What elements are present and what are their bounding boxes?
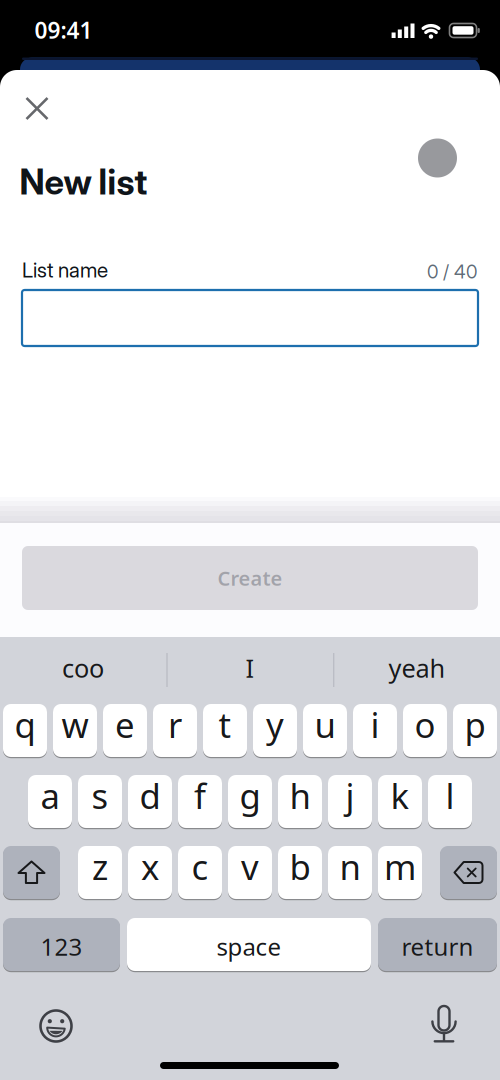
button[interactable]: n	[328, 846, 372, 901]
button[interactable]: f	[178, 775, 222, 830]
staticText: 123	[40, 931, 82, 962]
button[interactable]	[440, 846, 497, 901]
button[interactable]: p	[453, 704, 497, 759]
staticText: List name	[22, 257, 108, 282]
button[interactable]	[39, 1009, 73, 1043]
button[interactable]: x	[128, 846, 172, 901]
button[interactable]: 123	[3, 918, 120, 973]
button[interactable]: l	[428, 775, 472, 830]
button[interactable]: r	[153, 704, 197, 759]
button[interactable]	[3, 846, 60, 901]
staticText: n	[339, 843, 360, 889]
staticText: h	[289, 772, 310, 818]
button[interactable]: j	[328, 775, 372, 830]
staticText: e	[115, 701, 135, 747]
button[interactable]: q	[3, 704, 47, 759]
staticText: d	[139, 772, 160, 818]
button[interactable]: Create	[22, 546, 478, 610]
button[interactable]: t	[203, 704, 247, 759]
staticText: p	[464, 701, 485, 747]
staticText: Create	[217, 565, 282, 591]
staticText: return	[401, 931, 473, 962]
staticText: 0 / 40	[427, 260, 477, 283]
staticText: coo	[62, 651, 104, 685]
button[interactable]: space	[127, 918, 371, 973]
button[interactable]: s	[78, 775, 122, 830]
button[interactable]: d	[128, 775, 172, 830]
staticText: f	[194, 772, 206, 818]
staticText: l	[445, 772, 454, 818]
staticText: k	[390, 772, 409, 818]
staticText: b	[289, 843, 310, 889]
staticText: 09:41	[34, 15, 92, 45]
button[interactable]: I	[170, 643, 330, 693]
button[interactable]: e	[103, 704, 147, 759]
staticText: I	[245, 651, 254, 685]
button[interactable]: g	[228, 775, 272, 830]
button[interactable]: v	[228, 846, 272, 901]
staticText: space	[216, 931, 281, 962]
button[interactable]: return	[378, 918, 497, 973]
staticText: t	[218, 701, 231, 747]
staticText: w	[61, 701, 88, 747]
button[interactable]	[22, 290, 478, 346]
button[interactable]: h	[278, 775, 322, 830]
staticText: o	[414, 701, 435, 747]
staticText: r	[168, 701, 182, 747]
button[interactable]: o	[403, 704, 447, 759]
button[interactable]	[432, 1006, 456, 1043]
button[interactable]	[16, 88, 57, 129]
staticText: yeah	[388, 651, 445, 685]
staticText: g	[239, 772, 260, 818]
button[interactable]	[418, 138, 457, 177]
staticText: m	[384, 843, 416, 889]
button[interactable]: coo	[3, 643, 163, 693]
button[interactable]: w	[53, 704, 97, 759]
staticText: New list	[19, 161, 147, 203]
staticText: j	[345, 772, 354, 818]
staticText: s	[91, 772, 108, 818]
button[interactable]: i	[353, 704, 397, 759]
button[interactable]: c	[178, 846, 222, 901]
button[interactable]: u	[303, 704, 347, 759]
staticText: c	[191, 843, 208, 889]
staticText: a	[40, 772, 59, 818]
staticText: v	[241, 843, 259, 889]
button[interactable]: a	[28, 775, 72, 830]
staticText: q	[14, 701, 35, 747]
button[interactable]: k	[378, 775, 422, 830]
staticText: x	[141, 843, 159, 889]
staticText: y	[266, 701, 284, 747]
staticText: z	[92, 843, 108, 889]
button[interactable]: yeah	[337, 643, 497, 693]
staticText: i	[370, 701, 379, 747]
button[interactable]: z	[78, 846, 122, 901]
button[interactable]: y	[253, 704, 297, 759]
staticText: u	[314, 701, 335, 747]
button[interactable]: m	[378, 846, 422, 901]
button[interactable]: b	[278, 846, 322, 901]
